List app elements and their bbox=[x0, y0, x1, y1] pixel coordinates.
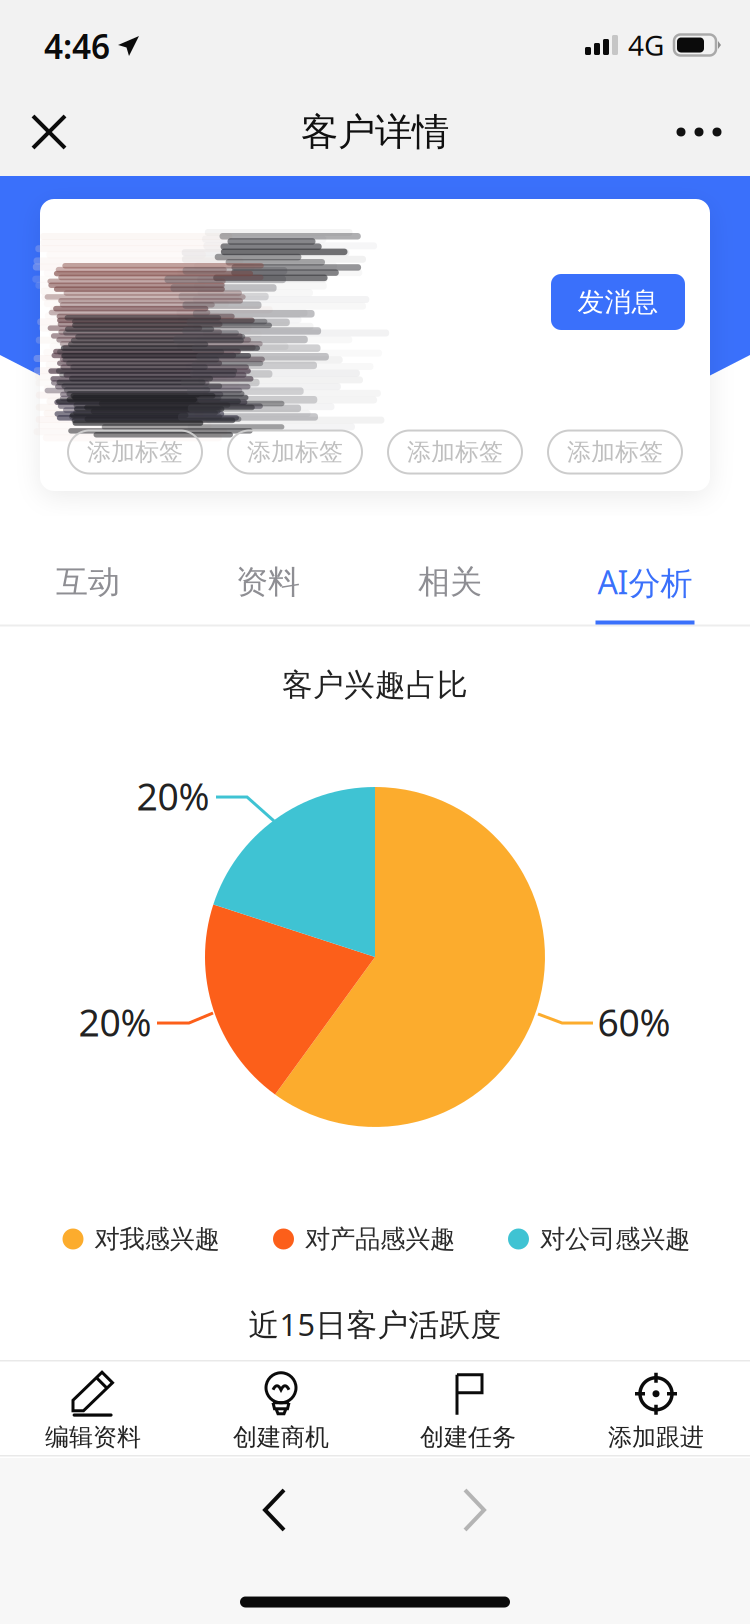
staticText: AI分析 bbox=[597, 561, 692, 603]
button[interactable]: 更多 bbox=[650, 91, 747, 172]
staticText: 4:46 bbox=[44, 24, 110, 68]
staticText: 近15日客户活跃度 bbox=[248, 1304, 501, 1344]
staticText: 客户兴趣占比 bbox=[282, 666, 468, 704]
staticText: 发消息 bbox=[577, 286, 658, 318]
staticText: 对我感兴趣 bbox=[94, 1223, 219, 1254]
staticText: 添加标签 bbox=[87, 437, 183, 467]
button[interactable]: 添加标签 bbox=[548, 430, 682, 473]
button[interactable]: 前进 bbox=[407, 1464, 541, 1556]
button[interactable]: 相关 bbox=[365, 516, 535, 627]
button[interactable]: 后退 bbox=[208, 1464, 342, 1556]
staticText: 创建任务 bbox=[420, 1423, 516, 1452]
staticText: 互动 bbox=[56, 562, 120, 602]
button[interactable]: 创建任务 bbox=[374, 1360, 561, 1456]
staticText: 添加标签 bbox=[567, 437, 663, 467]
button[interactable]: 添加跟进 bbox=[562, 1360, 749, 1456]
button[interactable]: 互动 bbox=[3, 516, 173, 627]
staticText: 对产品感兴趣 bbox=[305, 1223, 455, 1254]
button[interactable]: 添加标签 bbox=[228, 430, 362, 473]
staticText: 编辑资料 bbox=[45, 1423, 141, 1452]
button[interactable]: 资料 bbox=[183, 516, 353, 627]
button[interactable]: 发消息 bbox=[551, 274, 685, 330]
staticText: 添加跟进 bbox=[608, 1423, 704, 1452]
staticText: 20% bbox=[136, 771, 209, 821]
button[interactable]: 添加标签 bbox=[68, 430, 202, 473]
staticText: 相关 bbox=[418, 562, 482, 602]
button[interactable]: 编辑资料 bbox=[0, 1360, 186, 1456]
button[interactable]: 添加标签 bbox=[388, 430, 522, 473]
button[interactable]: AI分析 bbox=[560, 516, 730, 627]
staticText: 添加标签 bbox=[247, 437, 343, 467]
staticText: 4G bbox=[628, 26, 664, 64]
staticText: 60% bbox=[597, 997, 670, 1047]
button[interactable]: 关闭 bbox=[5, 88, 93, 176]
staticText: 资料 bbox=[236, 562, 300, 602]
staticText: 对公司感兴趣 bbox=[540, 1223, 690, 1254]
staticText: 20% bbox=[78, 997, 151, 1047]
staticText: 添加标签 bbox=[407, 437, 503, 467]
staticText: 客户详情 bbox=[301, 109, 449, 155]
staticText: 创建商机 bbox=[233, 1423, 329, 1452]
button[interactable]: 创建商机 bbox=[187, 1360, 374, 1456]
